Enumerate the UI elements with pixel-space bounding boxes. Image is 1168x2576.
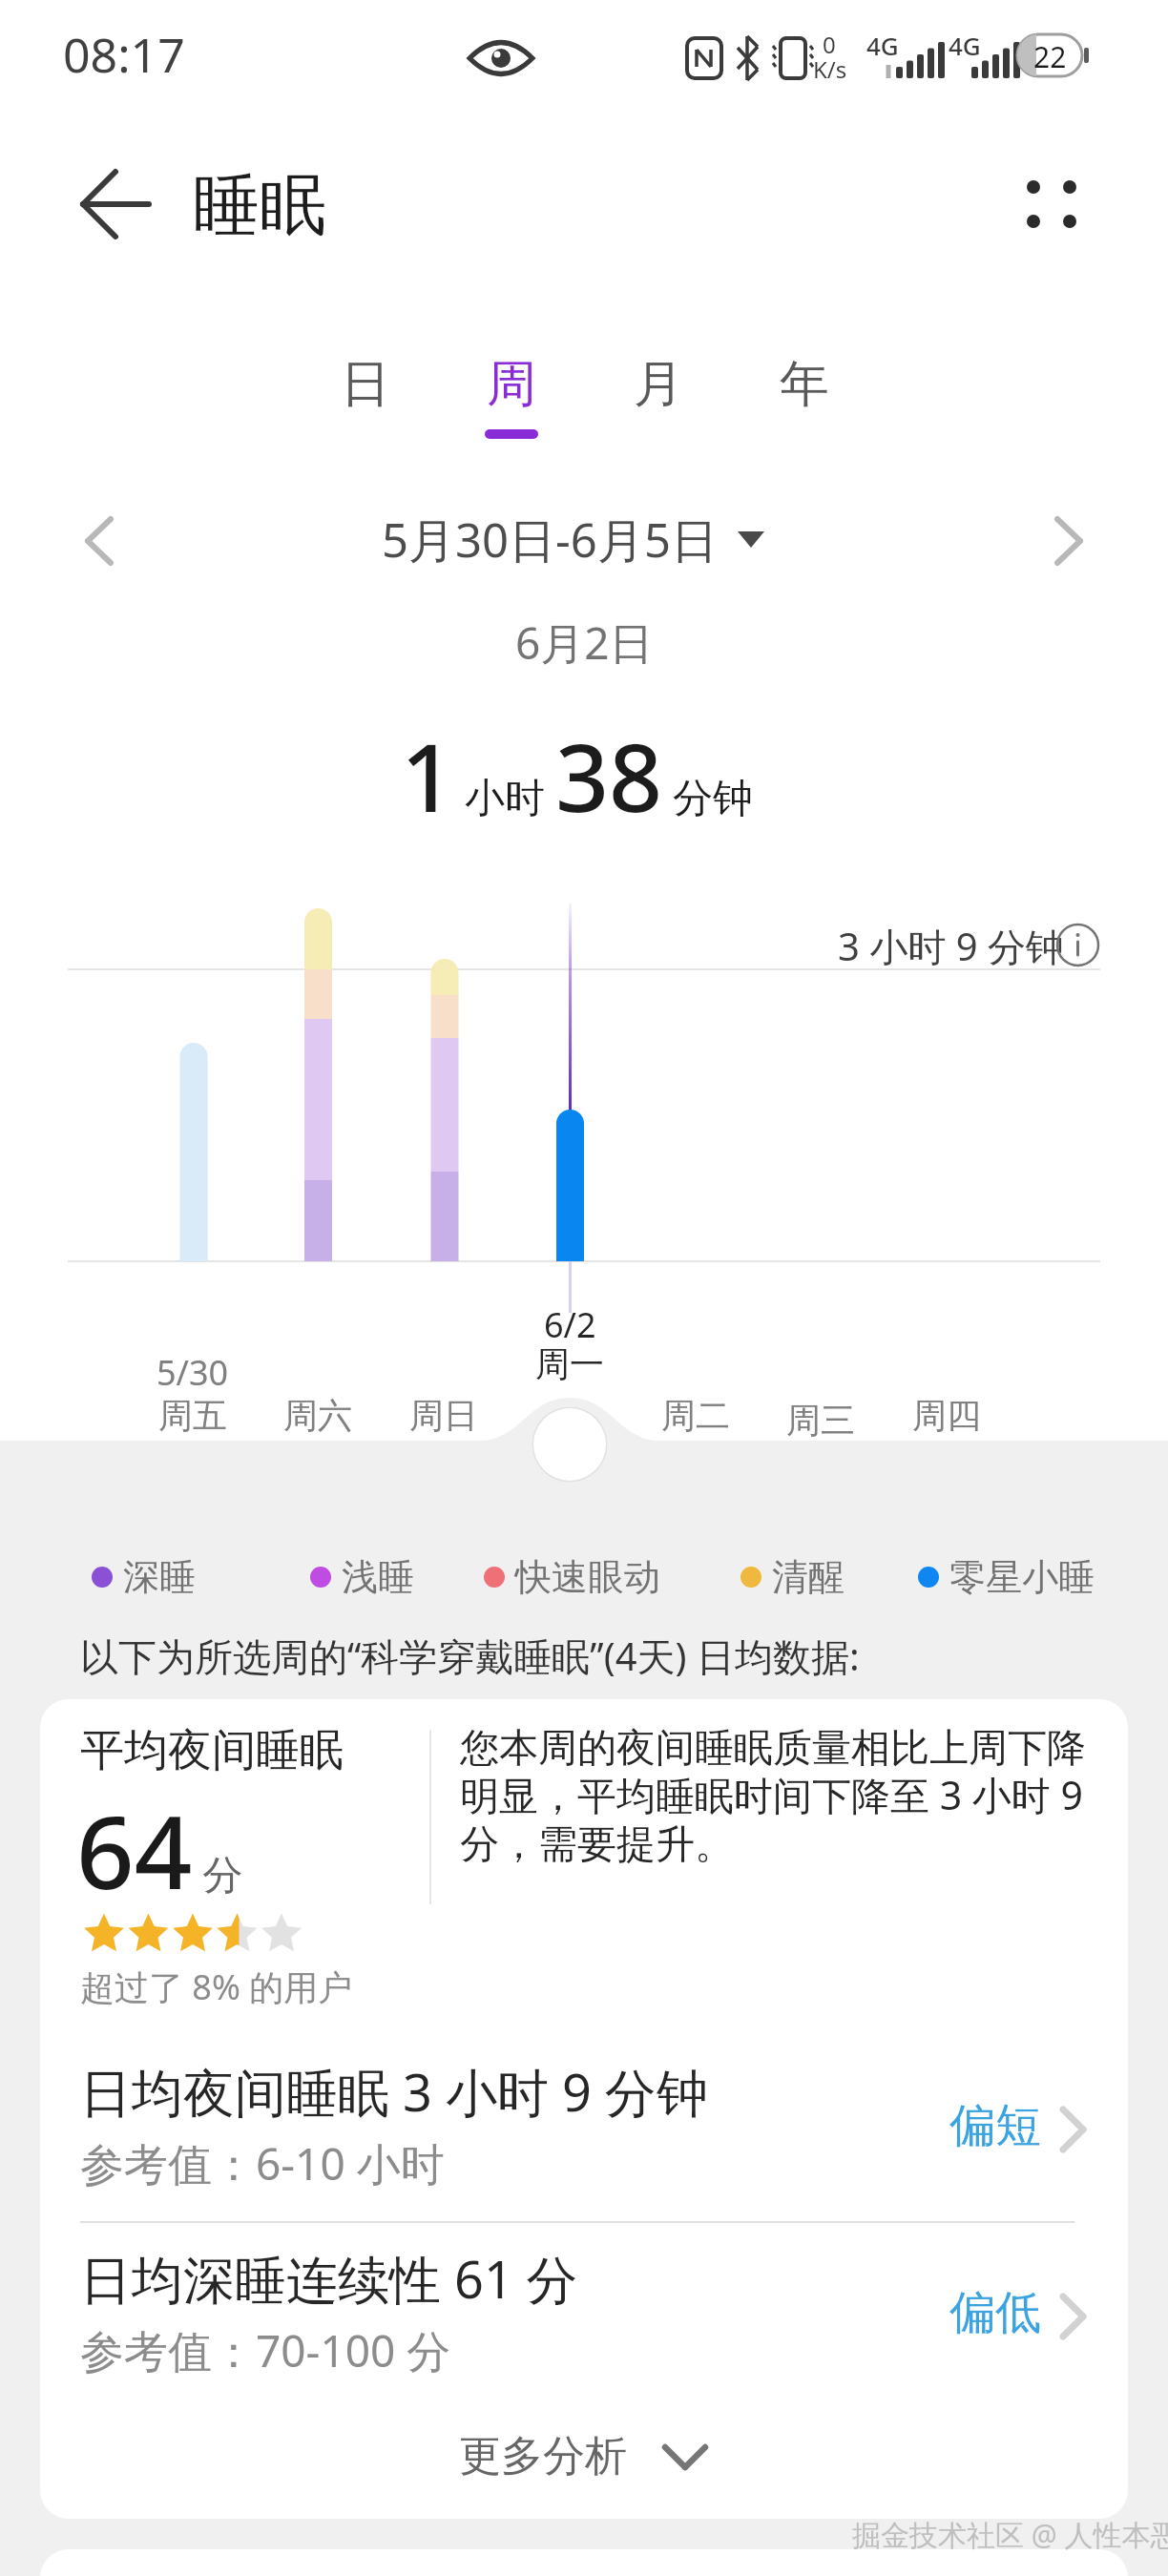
staticText: 5/30: [156, 1349, 229, 1396]
staticText: 平均夜间睡眠: [80, 1723, 344, 1778]
staticText: 清醒: [772, 1554, 845, 1600]
button[interactable]: 更多分析: [459, 2430, 709, 2483]
staticText: 月: [634, 353, 683, 416]
button[interactable]: [1008, 162, 1094, 248]
staticText: 64 分: [76, 1781, 243, 1919]
staticText: 更多分析: [459, 2430, 627, 2483]
staticText: 周四: [912, 1394, 981, 1437]
staticText: 08:17: [63, 22, 185, 87]
staticText: 5月30日-6月5日: [382, 508, 718, 571]
staticText: 周: [487, 353, 536, 416]
staticText: 1 小时 38 分钟: [401, 712, 753, 839]
staticText: 睡眠: [193, 164, 326, 248]
staticText: 日: [341, 353, 390, 416]
staticText: 日均深睡连续性 61 分: [80, 2243, 578, 2314]
staticText: 参考值：70-100 分: [80, 2320, 451, 2380]
staticText: 浅睡: [342, 1554, 414, 1600]
button[interactable]: 月: [606, 353, 711, 448]
staticText: K/s: [813, 53, 847, 85]
staticText: 参考值：6-10 小时: [80, 2133, 445, 2193]
button[interactable]: 周: [459, 353, 564, 448]
staticText: 超过了 8% 的用户: [80, 1963, 353, 2010]
staticText: 6/2: [544, 1301, 596, 1348]
staticText: 零星小睡: [949, 1554, 1095, 1600]
button[interactable]: 5月30日-6月5日: [382, 508, 765, 571]
staticText: 偏低: [949, 2284, 1041, 2341]
button[interactable]: 日均深睡连续性 61 分: [40, 2229, 1128, 2405]
staticText: 3 小时 9 分钟: [838, 920, 1064, 972]
staticText: 周一: [535, 1342, 604, 1385]
staticText: 0: [823, 29, 836, 60]
staticText: 周三: [786, 1399, 855, 1442]
staticText: 周六: [283, 1394, 352, 1437]
staticText: 以下为所选周的“科学穿戴睡眠”(4天) 日均数据:: [80, 1630, 860, 1682]
staticText: 周日: [409, 1394, 478, 1437]
staticText: 年: [780, 353, 829, 416]
button[interactable]: [74, 164, 155, 244]
staticText: 日均夜间睡眠 3 小时 9 分钟: [80, 2056, 708, 2127]
staticText: 周二: [661, 1394, 730, 1437]
staticText: 您本周的夜间睡眠质量相比上周下降 明显，平均睡眠时间下降至 3 小时 9 分，需…: [460, 1724, 1086, 1869]
staticText: 6月2日: [515, 613, 654, 673]
staticText: 周五: [158, 1394, 227, 1437]
staticText: 快速眼动: [515, 1554, 660, 1600]
staticText: 4G: [866, 29, 899, 62]
staticText: 掘金技术社区 @ 人性本恶: [852, 2515, 1168, 2554]
staticText: 深睡: [123, 1554, 196, 1600]
button[interactable]: 年: [752, 353, 857, 448]
button[interactable]: 日均夜间睡眠 3 小时 9 分钟: [40, 2042, 1128, 2218]
staticText: 偏短: [949, 2097, 1041, 2154]
staticText: 22: [1033, 37, 1067, 76]
button[interactable]: 日: [313, 353, 418, 448]
staticText: 4G: [949, 29, 981, 62]
